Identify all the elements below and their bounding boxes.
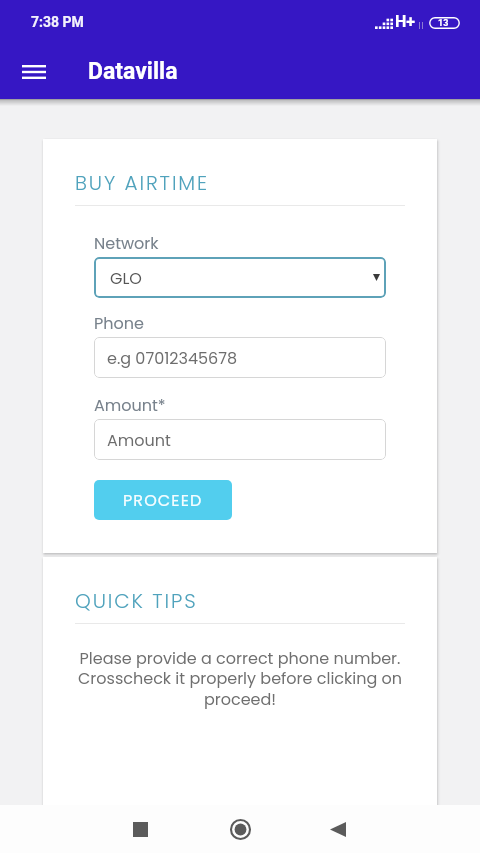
staticText: Network [94, 232, 159, 254]
staticText: QUICK TIPS [75, 587, 198, 615]
button[interactable]: PROCEED [94, 480, 232, 520]
staticText: PROCEED [123, 489, 203, 511]
staticText: Please provide a correct phone number. C… [75, 647, 405, 711]
staticText: GLO [110, 267, 142, 289]
button[interactable]: Amount [94, 419, 386, 460]
staticText: 13 [438, 18, 449, 29]
staticText: H+ [395, 12, 416, 31]
button[interactable]: Open navigation menu [10, 48, 58, 96]
button[interactable]: GLO [94, 257, 386, 298]
button[interactable]: Back [316, 807, 360, 851]
button[interactable]: e.g 07012345678 [94, 337, 386, 378]
staticText: Phone [94, 312, 144, 334]
button[interactable]: Home [218, 807, 262, 851]
staticText: Amount [107, 429, 171, 451]
staticText: Amount* [94, 394, 166, 416]
staticText: Datavilla [88, 58, 178, 85]
staticText: 7:38 PM [31, 14, 84, 30]
button[interactable]: Recent apps [118, 807, 162, 851]
staticText: BUY AIRTIME [75, 169, 210, 197]
staticText: e.g 07012345678 [107, 347, 238, 369]
